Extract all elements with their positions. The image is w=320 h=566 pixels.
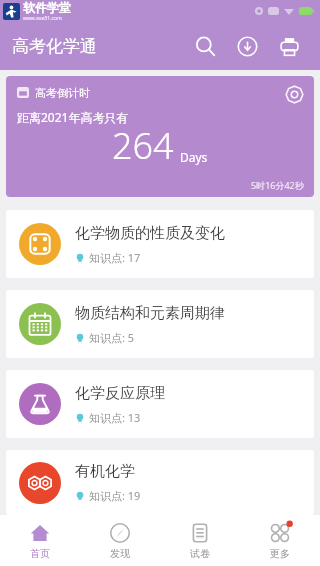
- button[interactable]: Settings: [283, 83, 305, 105]
- staticText: 知识点: 19: [89, 488, 141, 503]
- staticText: 化学反应原理: [75, 384, 165, 403]
- button[interactable]: 有机化学: [6, 450, 314, 515]
- staticText: 物质结构和元素周期律: [75, 304, 225, 323]
- staticText: 知识点: 17: [89, 250, 141, 265]
- staticText: 试卷: [190, 547, 210, 560]
- staticText: 知识点: 5: [89, 330, 135, 345]
- staticText: 首页: [30, 547, 50, 560]
- button[interactable]: Print: [268, 25, 310, 67]
- button[interactable]: Download: [226, 25, 268, 67]
- staticText: 更多: [270, 547, 290, 560]
- button[interactable]: 化学反应原理: [6, 370, 314, 438]
- staticText: 高考倒计时: [35, 86, 90, 100]
- staticText: Days: [180, 149, 208, 165]
- staticText: 264: [112, 121, 174, 170]
- button[interactable]: 发现: [80, 515, 160, 566]
- staticText: 有机化学: [75, 462, 135, 481]
- staticText: 高考化学通: [12, 36, 97, 57]
- button[interactable]: 首页: [0, 515, 80, 566]
- button[interactable]: 试卷: [160, 515, 240, 566]
- staticText: 软件学堂: [23, 0, 71, 15]
- staticText: 知识点: 13: [89, 410, 141, 425]
- staticText: www.xue51.com: [23, 15, 62, 22]
- staticText: 5时16分42秒: [251, 179, 304, 191]
- staticText: 发现: [110, 547, 130, 560]
- staticText: 化学物质的性质及变化: [75, 224, 225, 243]
- button[interactable]: 高考倒计时: [6, 76, 314, 197]
- button[interactable]: 物质结构和元素周期律: [6, 290, 314, 358]
- button[interactable]: 化学物质的性质及变化: [6, 210, 314, 278]
- button[interactable]: Search: [184, 25, 226, 67]
- button[interactable]: 更多: [240, 515, 320, 566]
- staticText: 距离2021年高考只有: [17, 109, 129, 125]
